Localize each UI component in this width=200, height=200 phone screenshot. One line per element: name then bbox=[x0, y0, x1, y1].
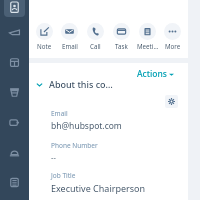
button[interactable]: Email bbox=[57, 23, 82, 50]
button[interactable]: Sales bbox=[0, 77, 29, 107]
button[interactable]: About this co… bbox=[36, 78, 113, 90]
staticText: Note bbox=[37, 42, 52, 50]
staticText: Actions bbox=[137, 68, 167, 80]
button[interactable]: Meeti… bbox=[135, 23, 160, 50]
button[interactable]: Settings bbox=[165, 95, 178, 108]
staticText: Task bbox=[115, 42, 128, 50]
staticText: About this co… bbox=[49, 78, 113, 90]
staticText: More bbox=[165, 42, 181, 50]
staticText: Executive Chairperson bbox=[51, 182, 146, 194]
button[interactable]: More bbox=[160, 23, 185, 50]
button[interactable]: Actions bbox=[137, 68, 174, 80]
staticText: Email bbox=[51, 109, 68, 118]
button[interactable]: Automation bbox=[0, 137, 29, 167]
button[interactable]: Reports bbox=[0, 167, 29, 197]
button[interactable]: Service bbox=[0, 107, 29, 137]
button[interactable]: Marketing bbox=[0, 47, 29, 77]
staticText: Meeti… bbox=[137, 42, 159, 50]
staticText: Call bbox=[90, 42, 101, 50]
button[interactable]: Call bbox=[83, 23, 108, 50]
button[interactable]: Task bbox=[109, 23, 134, 50]
button[interactable]: Contacts bbox=[4, 0, 25, 17]
staticText: Phone Number bbox=[51, 141, 98, 150]
button[interactable]: Conversations bbox=[0, 17, 29, 47]
staticText: bh@hubspot.com bbox=[51, 120, 122, 132]
staticText: -- bbox=[51, 152, 56, 162]
button[interactable]: Note bbox=[32, 23, 57, 50]
staticText: Email bbox=[62, 42, 78, 50]
staticText: Job Title bbox=[51, 171, 76, 180]
